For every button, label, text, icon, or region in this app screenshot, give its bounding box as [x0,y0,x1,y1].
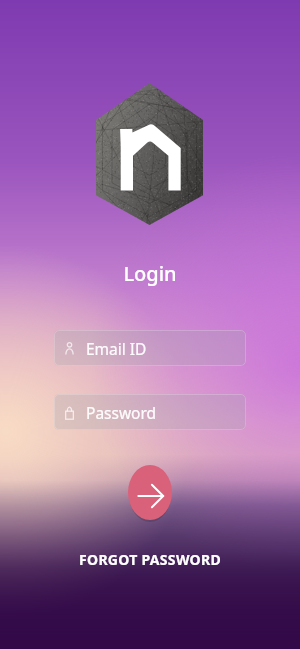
button[interactable]: FORGOT PASSWORD [0,550,300,569]
staticText: Email ID [86,338,147,359]
button[interactable]: Sign in [128,465,172,520]
staticText: Login [123,260,177,287]
button[interactable]: Password [54,394,246,430]
button[interactable]: Email ID [54,330,246,366]
staticText: Password [86,402,157,423]
staticText: FORGOT PASSWORD [79,550,221,569]
